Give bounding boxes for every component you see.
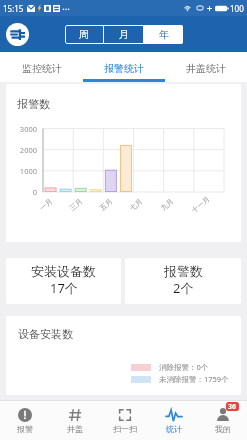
staticText: 1000	[6, 166, 37, 176]
staticText: 月	[119, 28, 129, 41]
staticText: 报警数	[164, 263, 203, 279]
staticText: 年	[159, 28, 169, 41]
button[interactable]: 统计	[149, 401, 198, 440]
staticText: 报警统计	[104, 62, 144, 75]
button[interactable]: 周	[65, 25, 103, 44]
button[interactable]: 报警数	[125, 258, 241, 304]
staticText: 一月	[38, 197, 54, 212]
staticText: 十一月	[190, 194, 211, 215]
staticText: 报警	[17, 424, 33, 434]
staticText: 消除报警：0个	[159, 362, 209, 372]
button[interactable]: 报警	[0, 401, 50, 440]
button[interactable]: 月	[104, 25, 143, 44]
staticText: 0	[6, 187, 37, 197]
button[interactable]: 井盖	[50, 401, 100, 440]
button[interactable]: 安装设备数	[6, 258, 121, 304]
staticText: 三月	[68, 197, 84, 212]
staticText: 设备安装数	[18, 327, 73, 341]
staticText: 统计	[166, 424, 182, 434]
staticText: 100	[230, 3, 244, 14]
staticText: 周	[79, 28, 89, 41]
staticText: 我的	[215, 424, 231, 434]
staticText: 井盖	[67, 424, 83, 434]
button[interactable]: 监控统计	[0, 52, 83, 82]
staticText: 七月	[128, 197, 144, 212]
staticText: 扫一扫	[113, 424, 137, 434]
staticText: 未消除报警：1759个	[159, 374, 229, 384]
staticText: 17个	[50, 279, 78, 297]
button[interactable]: 年	[144, 25, 183, 44]
staticText: 安装设备数	[31, 263, 96, 279]
staticText: 井盖统计	[186, 62, 226, 75]
staticText: 36	[228, 402, 237, 411]
button[interactable]: 36	[198, 401, 247, 440]
staticText: 2个	[173, 279, 194, 297]
staticText: 15:15	[3, 3, 24, 14]
staticText: 九月	[159, 197, 175, 212]
staticText: 2000	[6, 145, 37, 155]
button[interactable]: 报警统计	[83, 52, 165, 82]
button[interactable]: 扫一扫	[100, 401, 149, 440]
button[interactable]: 井盖统计	[165, 52, 247, 82]
staticText: 五月	[98, 197, 114, 212]
staticText: 监控统计	[22, 62, 62, 75]
staticText: 报警数	[17, 97, 50, 111]
staticText: 3000	[6, 124, 37, 134]
button[interactable]: Home	[6, 23, 29, 46]
